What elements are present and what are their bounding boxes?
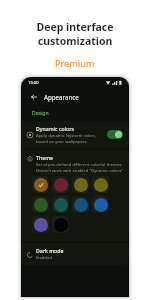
button[interactable]: Theme swatch bbox=[92, 176, 109, 193]
button[interactable]: Back bbox=[28, 91, 40, 103]
button[interactable]: Theme swatch bbox=[52, 196, 69, 213]
staticText: Deep interface customization bbox=[0, 20, 150, 48]
staticText: Set of pre-defined different colorful th… bbox=[36, 162, 123, 173]
staticText: Theme bbox=[36, 154, 54, 161]
button[interactable]: Dark mode bbox=[21, 243, 129, 265]
button[interactable]: Dynamic colors toggle bbox=[107, 130, 123, 139]
staticText: Apply dynamic (system) colors, based on … bbox=[36, 133, 104, 144]
staticText: Premium bbox=[55, 57, 95, 69]
button[interactable]: Theme swatch bbox=[32, 176, 49, 193]
button[interactable]: Dynamic colors bbox=[21, 121, 129, 148]
button[interactable]: Theme swatch bbox=[52, 216, 69, 233]
button[interactable]: Theme swatch bbox=[32, 196, 49, 213]
button[interactable]: Theme swatch bbox=[32, 216, 49, 233]
button[interactable]: Theme bbox=[21, 150, 129, 241]
button[interactable]: Theme swatch bbox=[72, 196, 89, 213]
staticText: Dark mode bbox=[36, 247, 64, 254]
button[interactable]: Theme swatch bbox=[92, 196, 109, 213]
staticText: 15:00 bbox=[28, 80, 39, 86]
staticText: Appearance bbox=[44, 93, 79, 101]
staticText: Enabled bbox=[36, 255, 52, 261]
staticText: Design bbox=[32, 110, 49, 117]
staticText: Dynamic colors bbox=[36, 125, 74, 132]
button[interactable]: Theme swatch bbox=[52, 176, 69, 193]
button[interactable]: Theme swatch bbox=[72, 176, 89, 193]
